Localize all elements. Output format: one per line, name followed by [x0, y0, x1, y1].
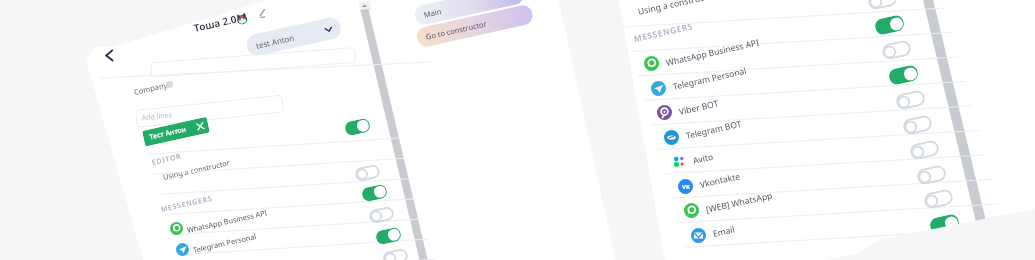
staticText: WhatsApp Business API — [665, 36, 761, 69]
button[interactable]: Edit — [257, 8, 268, 19]
button[interactable]: Enabled — [361, 183, 388, 203]
staticText: WhatsApp Business API — [186, 207, 268, 235]
staticText: Main — [423, 6, 443, 20]
button[interactable]: Disabled — [881, 39, 912, 61]
staticText: Тест Антон — [148, 124, 188, 142]
button[interactable]: Main — [413, 0, 526, 27]
staticText: Go to constructor — [425, 18, 488, 42]
staticText: Using a constructor — [162, 157, 231, 182]
button[interactable]: Disabled — [895, 89, 926, 111]
button[interactable]: Disabled — [368, 205, 395, 225]
button[interactable]: Disabled — [867, 0, 898, 11]
button[interactable]: Go to constructor — [415, 3, 534, 49]
staticText: EDITOR — [151, 152, 182, 168]
button[interactable]: Enabled — [888, 64, 919, 86]
button[interactable]: Disabled — [354, 163, 381, 183]
staticText: VK — [682, 183, 690, 191]
staticText: Avito — [692, 151, 715, 167]
button[interactable]: Disabled — [916, 164, 947, 186]
button[interactable]: Enabled — [929, 213, 960, 235]
staticText: Telegram BOT — [685, 118, 743, 142]
button[interactable]: Back — [101, 47, 118, 64]
button[interactable]: Enabled — [344, 117, 371, 137]
button[interactable]: Тест Антон — [148, 121, 204, 142]
staticText: MESSENGERS — [160, 194, 214, 215]
button[interactable]: Enabled — [375, 226, 402, 246]
staticText: Тоша 2.0 — [192, 12, 238, 35]
button[interactable]: Disabled — [923, 188, 954, 210]
staticText: MESSENGERS — [633, 20, 695, 44]
staticText: Vkontakte — [699, 170, 741, 191]
button[interactable]: Enabled — [874, 14, 905, 36]
staticText: test Anton — [255, 32, 295, 51]
staticText: Company — [133, 80, 168, 97]
staticText: Add lines — [141, 110, 173, 123]
button[interactable]: Disabled — [909, 139, 940, 161]
button[interactable]: test Anton — [245, 15, 343, 58]
button[interactable]: Disabled — [902, 114, 933, 136]
staticText: [WEB] WhatsApp — [705, 189, 774, 216]
staticText: Using a constructor — [637, 0, 717, 18]
staticText: Telegram Personal — [192, 231, 257, 255]
staticText: Email — [712, 223, 737, 240]
staticText: Viber BOT — [678, 97, 720, 118]
staticText: Telegram Personal — [672, 65, 748, 93]
button[interactable]: Disabled — [382, 247, 409, 260]
